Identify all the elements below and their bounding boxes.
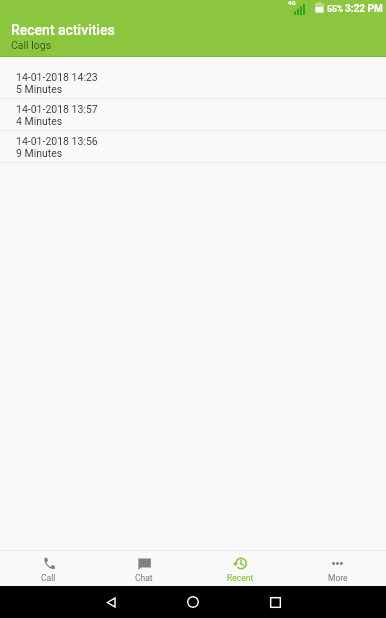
staticText: Chat xyxy=(135,573,153,583)
staticText: 9 Minutes xyxy=(16,147,63,159)
button[interactable]: 14-01-2018 14:23 xyxy=(0,67,386,99)
staticText: 14-01-2018 13:56 xyxy=(16,135,98,147)
button[interactable]: Call xyxy=(0,551,96,586)
button[interactable]: Back xyxy=(97,588,125,616)
staticText: 14-01-2018 14:23 xyxy=(16,71,98,83)
button[interactable]: Chat xyxy=(96,551,192,586)
staticText: 3:22 PM xyxy=(345,3,383,15)
button[interactable]: More xyxy=(289,551,386,586)
staticText: 5 Minutes xyxy=(16,83,63,95)
staticText: 14-01-2018 13:57 xyxy=(16,103,98,115)
button[interactable]: Recents xyxy=(261,588,289,616)
button[interactable]: Recent xyxy=(192,551,289,586)
staticText: Call logs xyxy=(11,39,52,51)
staticText: Recent activities xyxy=(11,22,115,38)
button[interactable]: Home xyxy=(179,588,207,616)
staticText: 55% xyxy=(327,4,344,14)
staticText: Call xyxy=(41,573,56,583)
button[interactable]: 14-01-2018 13:56 xyxy=(0,131,386,163)
staticText: 4G xyxy=(288,0,296,6)
staticText: More xyxy=(328,573,348,583)
staticText: 4 Minutes xyxy=(16,115,63,127)
button[interactable]: 14-01-2018 13:57 xyxy=(0,99,386,131)
staticText: Recent xyxy=(227,573,254,583)
